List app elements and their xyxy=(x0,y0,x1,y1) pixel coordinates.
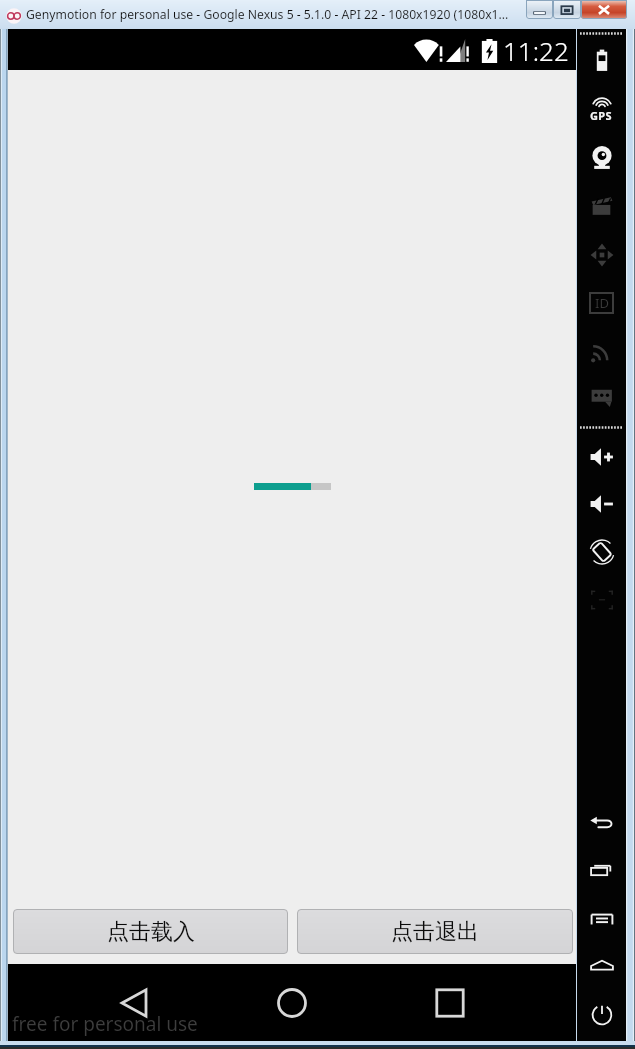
button[interactable]: Rotate xyxy=(577,530,626,574)
staticText: free for personal use xyxy=(12,1011,198,1037)
button[interactable]: Maximize xyxy=(553,0,581,19)
button[interactable]: Menu xyxy=(577,897,626,941)
button[interactable]: Camera xyxy=(577,136,626,180)
button[interactable]: Network xyxy=(577,329,626,373)
button[interactable]: SMS xyxy=(577,374,626,418)
button[interactable]: D-pad xyxy=(577,233,626,277)
button[interactable]: Back xyxy=(102,971,166,1035)
button[interactable]: Fullscreen xyxy=(577,578,626,622)
button[interactable]: Power xyxy=(577,993,626,1037)
staticText: 点击退出 xyxy=(391,918,479,946)
button[interactable]: Recent apps xyxy=(418,971,482,1035)
button[interactable]: Battery xyxy=(577,38,626,82)
button[interactable]: Recent apps xyxy=(577,849,626,893)
button[interactable]: Volume down xyxy=(577,482,626,526)
staticText: 11:22 xyxy=(503,33,569,68)
button[interactable]: Identifiers xyxy=(577,281,626,325)
button[interactable]: Home xyxy=(577,944,626,988)
button[interactable]: 点击退出 xyxy=(297,909,573,954)
button[interactable]: GPS xyxy=(577,88,626,132)
button[interactable]: Minimize xyxy=(526,0,553,19)
button[interactable]: Video xyxy=(577,184,626,228)
staticText: Genymotion for personal use - Google Nex… xyxy=(26,6,509,23)
button[interactable]: Home xyxy=(260,971,324,1035)
staticText: GPS xyxy=(590,108,613,123)
button[interactable]: Back xyxy=(577,801,626,845)
staticText: 点击载入 xyxy=(107,918,195,946)
button[interactable]: Volume up xyxy=(577,435,626,479)
button[interactable]: 点击载入 xyxy=(13,909,288,954)
button[interactable]: Close xyxy=(581,0,627,19)
staticText: ID xyxy=(595,294,609,312)
